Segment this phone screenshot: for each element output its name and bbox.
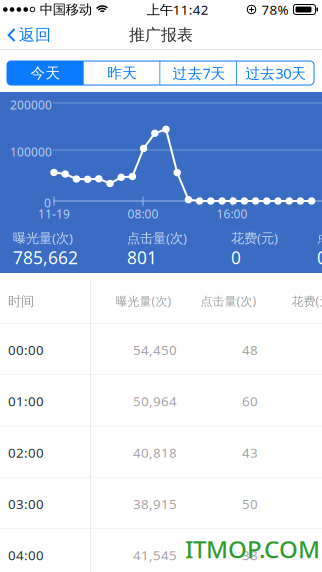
- staticText: 50,964: [133, 392, 177, 410]
- staticText: 点击量(次): [201, 293, 257, 309]
- staticText: 02:00: [8, 444, 44, 461]
- staticText: 花费(元): [231, 229, 278, 247]
- staticText: 38: [242, 546, 258, 564]
- button[interactable]: 03:00: [0, 273, 322, 572]
- staticText: 点: [317, 229, 322, 245]
- staticText: 0: [317, 246, 322, 269]
- staticText: 40,818: [133, 444, 177, 461]
- staticText: 38,915: [133, 495, 177, 513]
- button[interactable]: 过去7天: [160, 61, 237, 85]
- staticText: 43: [242, 444, 258, 461]
- staticText: 时间: [8, 293, 34, 309]
- staticText: 16:00: [216, 206, 247, 222]
- staticText: 中国移动: [40, 1, 92, 18]
- staticText: 花费(元): [292, 293, 322, 309]
- button[interactable]: 昨天: [84, 61, 161, 85]
- staticText: 200000: [10, 97, 52, 113]
- staticText: 801: [127, 246, 157, 269]
- staticText: 54,450: [133, 341, 177, 359]
- button[interactable]: 00:00: [0, 273, 322, 572]
- staticText: 78%: [261, 1, 288, 18]
- staticText: 50: [242, 495, 258, 513]
- staticText: 04:00: [8, 546, 44, 564]
- staticText: 100000: [10, 144, 52, 160]
- staticText: 上午11:42: [147, 1, 209, 18]
- button[interactable]: 02:00: [0, 273, 322, 572]
- staticText: 曝光量(次): [13, 229, 73, 247]
- staticText: 01:00: [8, 392, 44, 410]
- button[interactable]: 过去30天: [237, 61, 314, 85]
- staticText: 返回: [19, 25, 51, 45]
- button[interactable]: 返回: [0, 20, 59, 50]
- staticText: 推广报表: [129, 25, 193, 45]
- staticText: 48: [242, 341, 258, 359]
- button[interactable]: 今天: [7, 61, 84, 85]
- button[interactable]: 01:00: [0, 273, 322, 572]
- staticText: 0: [231, 246, 241, 269]
- staticText: 0: [44, 195, 51, 211]
- staticText: 41,545: [133, 546, 177, 564]
- staticText: 点击量(次): [127, 229, 187, 247]
- staticText: 60: [242, 392, 258, 410]
- staticText: 11-19: [38, 206, 70, 222]
- staticText: 08:00: [127, 206, 158, 222]
- staticText: 过去30天: [245, 63, 306, 83]
- staticText: 00:00: [8, 341, 44, 359]
- staticText: 昨天: [107, 64, 137, 82]
- staticText: 曝光量(次): [115, 293, 171, 309]
- staticText: 785,662: [13, 246, 78, 269]
- staticText: 今天: [30, 64, 60, 82]
- staticText: ITMOP.COM: [185, 533, 320, 565]
- button[interactable]: 04:00: [0, 273, 322, 572]
- staticText: 过去7天: [172, 63, 225, 83]
- staticText: 03:00: [8, 495, 44, 513]
